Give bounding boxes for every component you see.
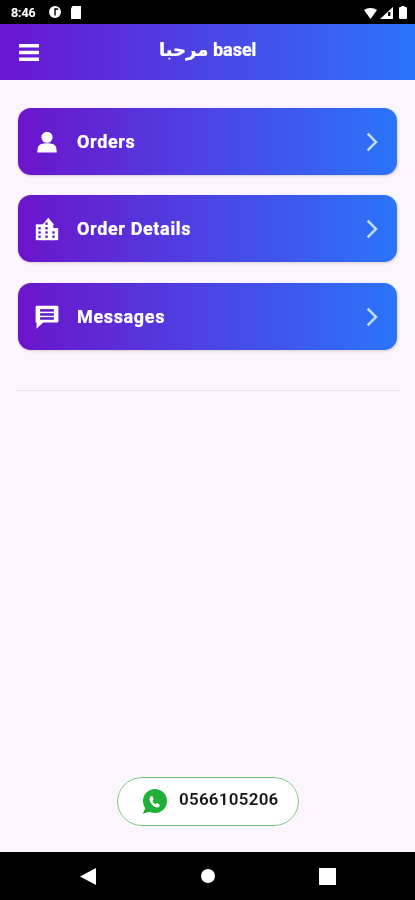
button[interactable]: Home (168, 852, 248, 900)
staticText: 8:46 (11, 5, 36, 20)
staticText: 0566105206 (179, 789, 279, 809)
button[interactable]: Order Details (18, 195, 397, 262)
staticText: Order Details (77, 218, 192, 239)
button[interactable]: Messages (18, 283, 397, 350)
staticText: Messages (77, 306, 166, 327)
button[interactable]: Menu (9, 32, 49, 72)
staticText: مرحبا basel (159, 39, 257, 60)
staticText: Orders (77, 131, 136, 152)
button[interactable]: Back (48, 852, 128, 900)
button[interactable]: 0566105206 (117, 777, 299, 826)
button[interactable]: Recent apps (287, 852, 367, 900)
button[interactable]: Orders (18, 108, 397, 175)
